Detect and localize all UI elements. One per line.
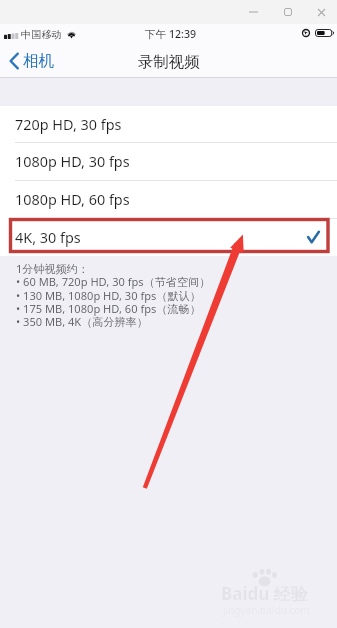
staticText: • 350 MB, 4K（高分辨率） (16, 314, 148, 329)
staticText: • 175 MB, 1080p HD, 60 fps（流畅） (16, 301, 201, 316)
button[interactable]: 720p HD, 30 fps (0, 106, 337, 143)
button[interactable]: 1080p HD, 60 fps (0, 181, 337, 219)
button[interactable]: Maximize (272, 0, 306, 24)
staticText: 720p HD, 30 fps (15, 115, 122, 135)
staticText: 相机 (23, 51, 55, 71)
button[interactable]: 相机 (9, 43, 55, 78)
button[interactable]: Minimize (238, 0, 272, 24)
staticText: 录制视频 (138, 52, 200, 71)
staticText: Baidu 经验 (221, 582, 308, 605)
button[interactable]: Close (306, 0, 337, 24)
button[interactable]: 4K, 30 fps (0, 219, 337, 256)
staticText: 1080p HD, 60 fps (15, 190, 130, 210)
staticText: 4K, 30 fps (15, 228, 81, 248)
staticText: 1080p HD, 30 fps (15, 152, 130, 172)
staticText: • 130 MB, 1080p HD, 30 fps（默认） (16, 288, 201, 303)
staticText: 1分钟视频约： (16, 261, 89, 276)
button[interactable]: 1080p HD, 30 fps (0, 143, 337, 181)
staticText: 中国移动 (21, 28, 62, 41)
staticText: 下午 12:39 (145, 27, 197, 41)
staticText: • 60 MB, 720p HD, 30 fps（节省空间） (16, 274, 211, 289)
